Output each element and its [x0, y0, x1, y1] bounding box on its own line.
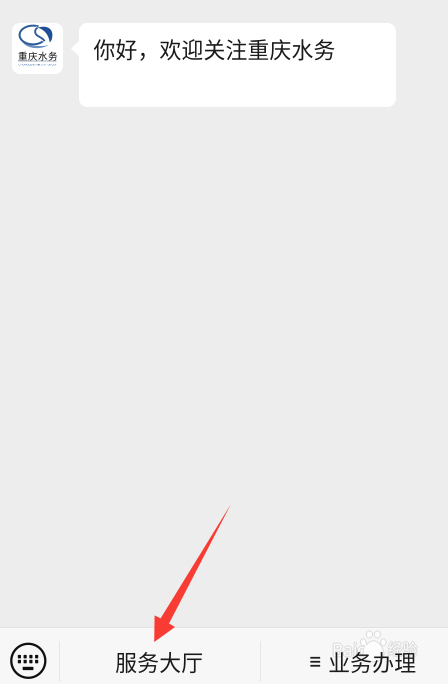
- staticText: 经验: [387, 637, 417, 659]
- staticText: Baidu: [331, 638, 378, 661]
- staticText: 经验: [388, 637, 418, 659]
- staticText: CHONGQING WATER GROUP: [18, 63, 57, 66]
- staticText: 经验: [388, 636, 418, 658]
- button[interactable]: 业务办理: [260, 628, 448, 684]
- staticText: 你好，欢迎关注重庆水务: [93, 32, 335, 64]
- staticText: Baidu: [332, 638, 379, 661]
- staticText: 经验: [388, 638, 418, 660]
- staticText: 服务大厅: [115, 645, 203, 677]
- button[interactable]: Keyboard: [0, 628, 59, 684]
- staticText: 业务办理: [328, 645, 416, 677]
- staticText: Baidu: [332, 639, 379, 662]
- staticText: Baidu: [332, 637, 379, 660]
- button[interactable]: 服务大厅: [59, 628, 260, 684]
- staticText: Baidu: [333, 638, 380, 661]
- staticText: 重庆水务: [18, 49, 58, 62]
- staticText: 经验: [388, 637, 418, 659]
